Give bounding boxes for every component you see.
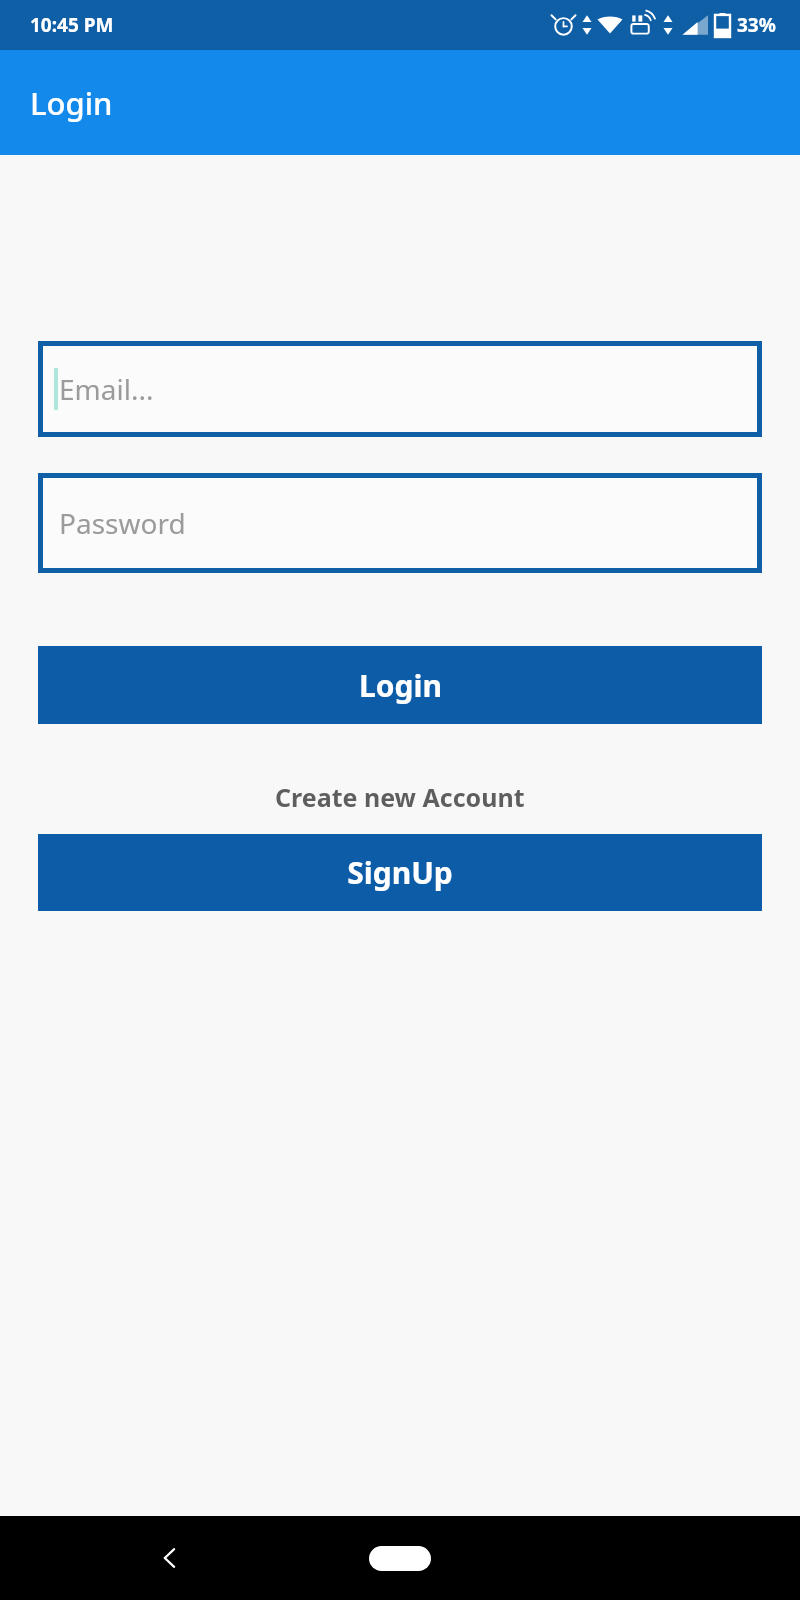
staticText: Password [59, 504, 186, 542]
button[interactable]: Email... [38, 341, 762, 437]
staticText: 10:45 PM [30, 12, 114, 38]
staticText: Login [30, 82, 113, 124]
staticText: Email... [59, 370, 154, 408]
button[interactable]: Back [140, 1528, 200, 1588]
button[interactable]: Password [38, 473, 762, 573]
staticText: SignUp [347, 852, 453, 893]
button[interactable]: Login [0, 50, 800, 155]
button[interactable]: Login [38, 646, 762, 724]
staticText: Login [359, 665, 442, 706]
button[interactable]: Home [350, 1530, 450, 1586]
staticText: Create new Account [275, 780, 525, 814]
button[interactable]: SignUp [38, 834, 762, 911]
staticText: 33% [737, 12, 776, 38]
